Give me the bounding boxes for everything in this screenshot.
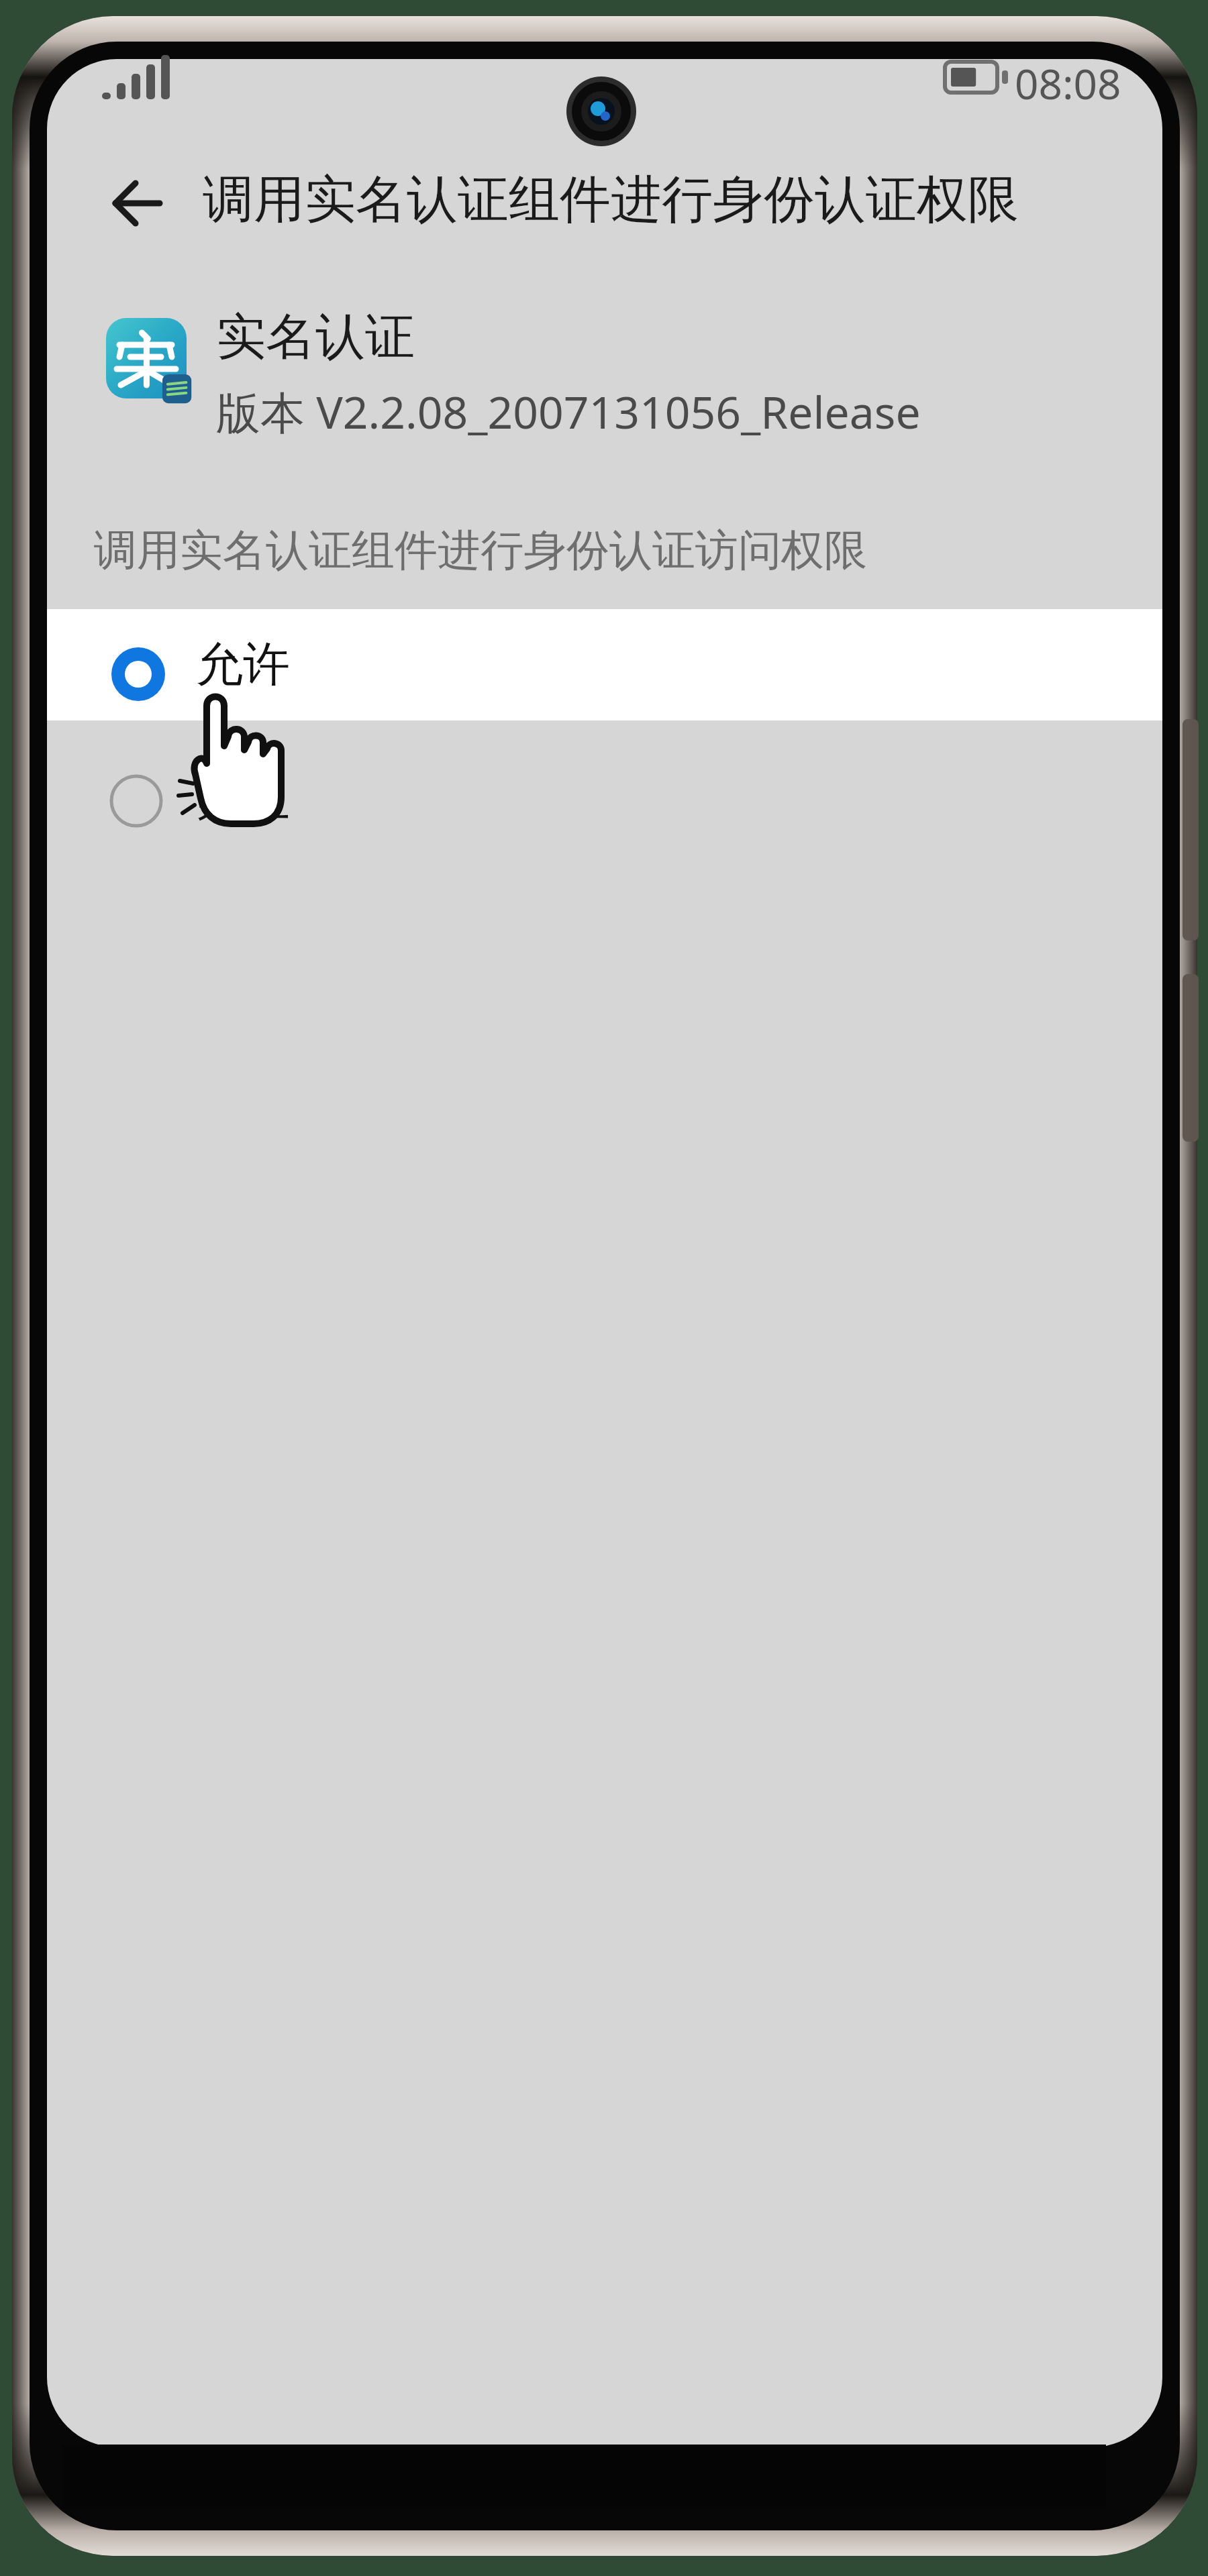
button[interactable]: 返回 — [85, 164, 189, 247]
staticText: 调用实名认证组件进行身份认证权限 — [203, 168, 1019, 232]
button[interactable]: 允许 — [47, 609, 1162, 720]
staticText: 08:08 — [1015, 55, 1121, 111]
button[interactable]: 禁止 — [47, 745, 1162, 856]
staticText: 允许 — [196, 635, 290, 694]
staticText: 版本 V2.2.08_2007131056_Release — [216, 381, 921, 441]
staticText: 调用实名认证组件进行身份认证访问权限 — [94, 523, 867, 578]
staticText: 实名认证 — [216, 306, 415, 368]
staticText: 禁止 — [196, 771, 290, 830]
